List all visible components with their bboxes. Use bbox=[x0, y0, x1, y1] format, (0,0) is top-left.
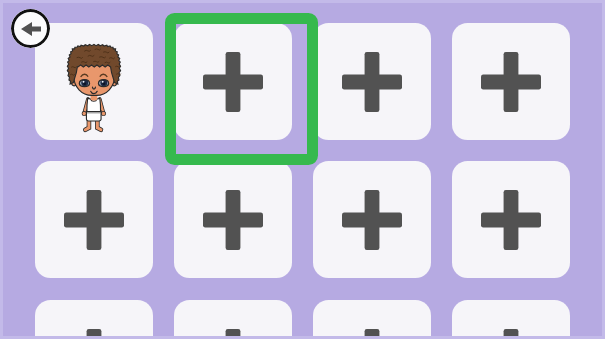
button[interactable]: Add character bbox=[452, 23, 570, 140]
button[interactable]: Add character bbox=[35, 300, 153, 336]
button[interactable]: Back bbox=[11, 9, 50, 48]
button[interactable]: Character bbox=[35, 23, 153, 140]
button[interactable]: Add character bbox=[452, 300, 570, 336]
button[interactable]: Add character bbox=[313, 23, 431, 140]
button[interactable]: Selected slot bbox=[165, 13, 318, 165]
button[interactable]: Add character bbox=[313, 161, 431, 278]
button[interactable]: Add character bbox=[174, 161, 292, 278]
button[interactable]: Add character bbox=[313, 300, 431, 336]
button[interactable]: Add character bbox=[174, 23, 292, 140]
button[interactable]: Add character bbox=[452, 161, 570, 278]
button[interactable]: Add character bbox=[35, 161, 153, 278]
button[interactable]: Add character bbox=[174, 300, 292, 336]
